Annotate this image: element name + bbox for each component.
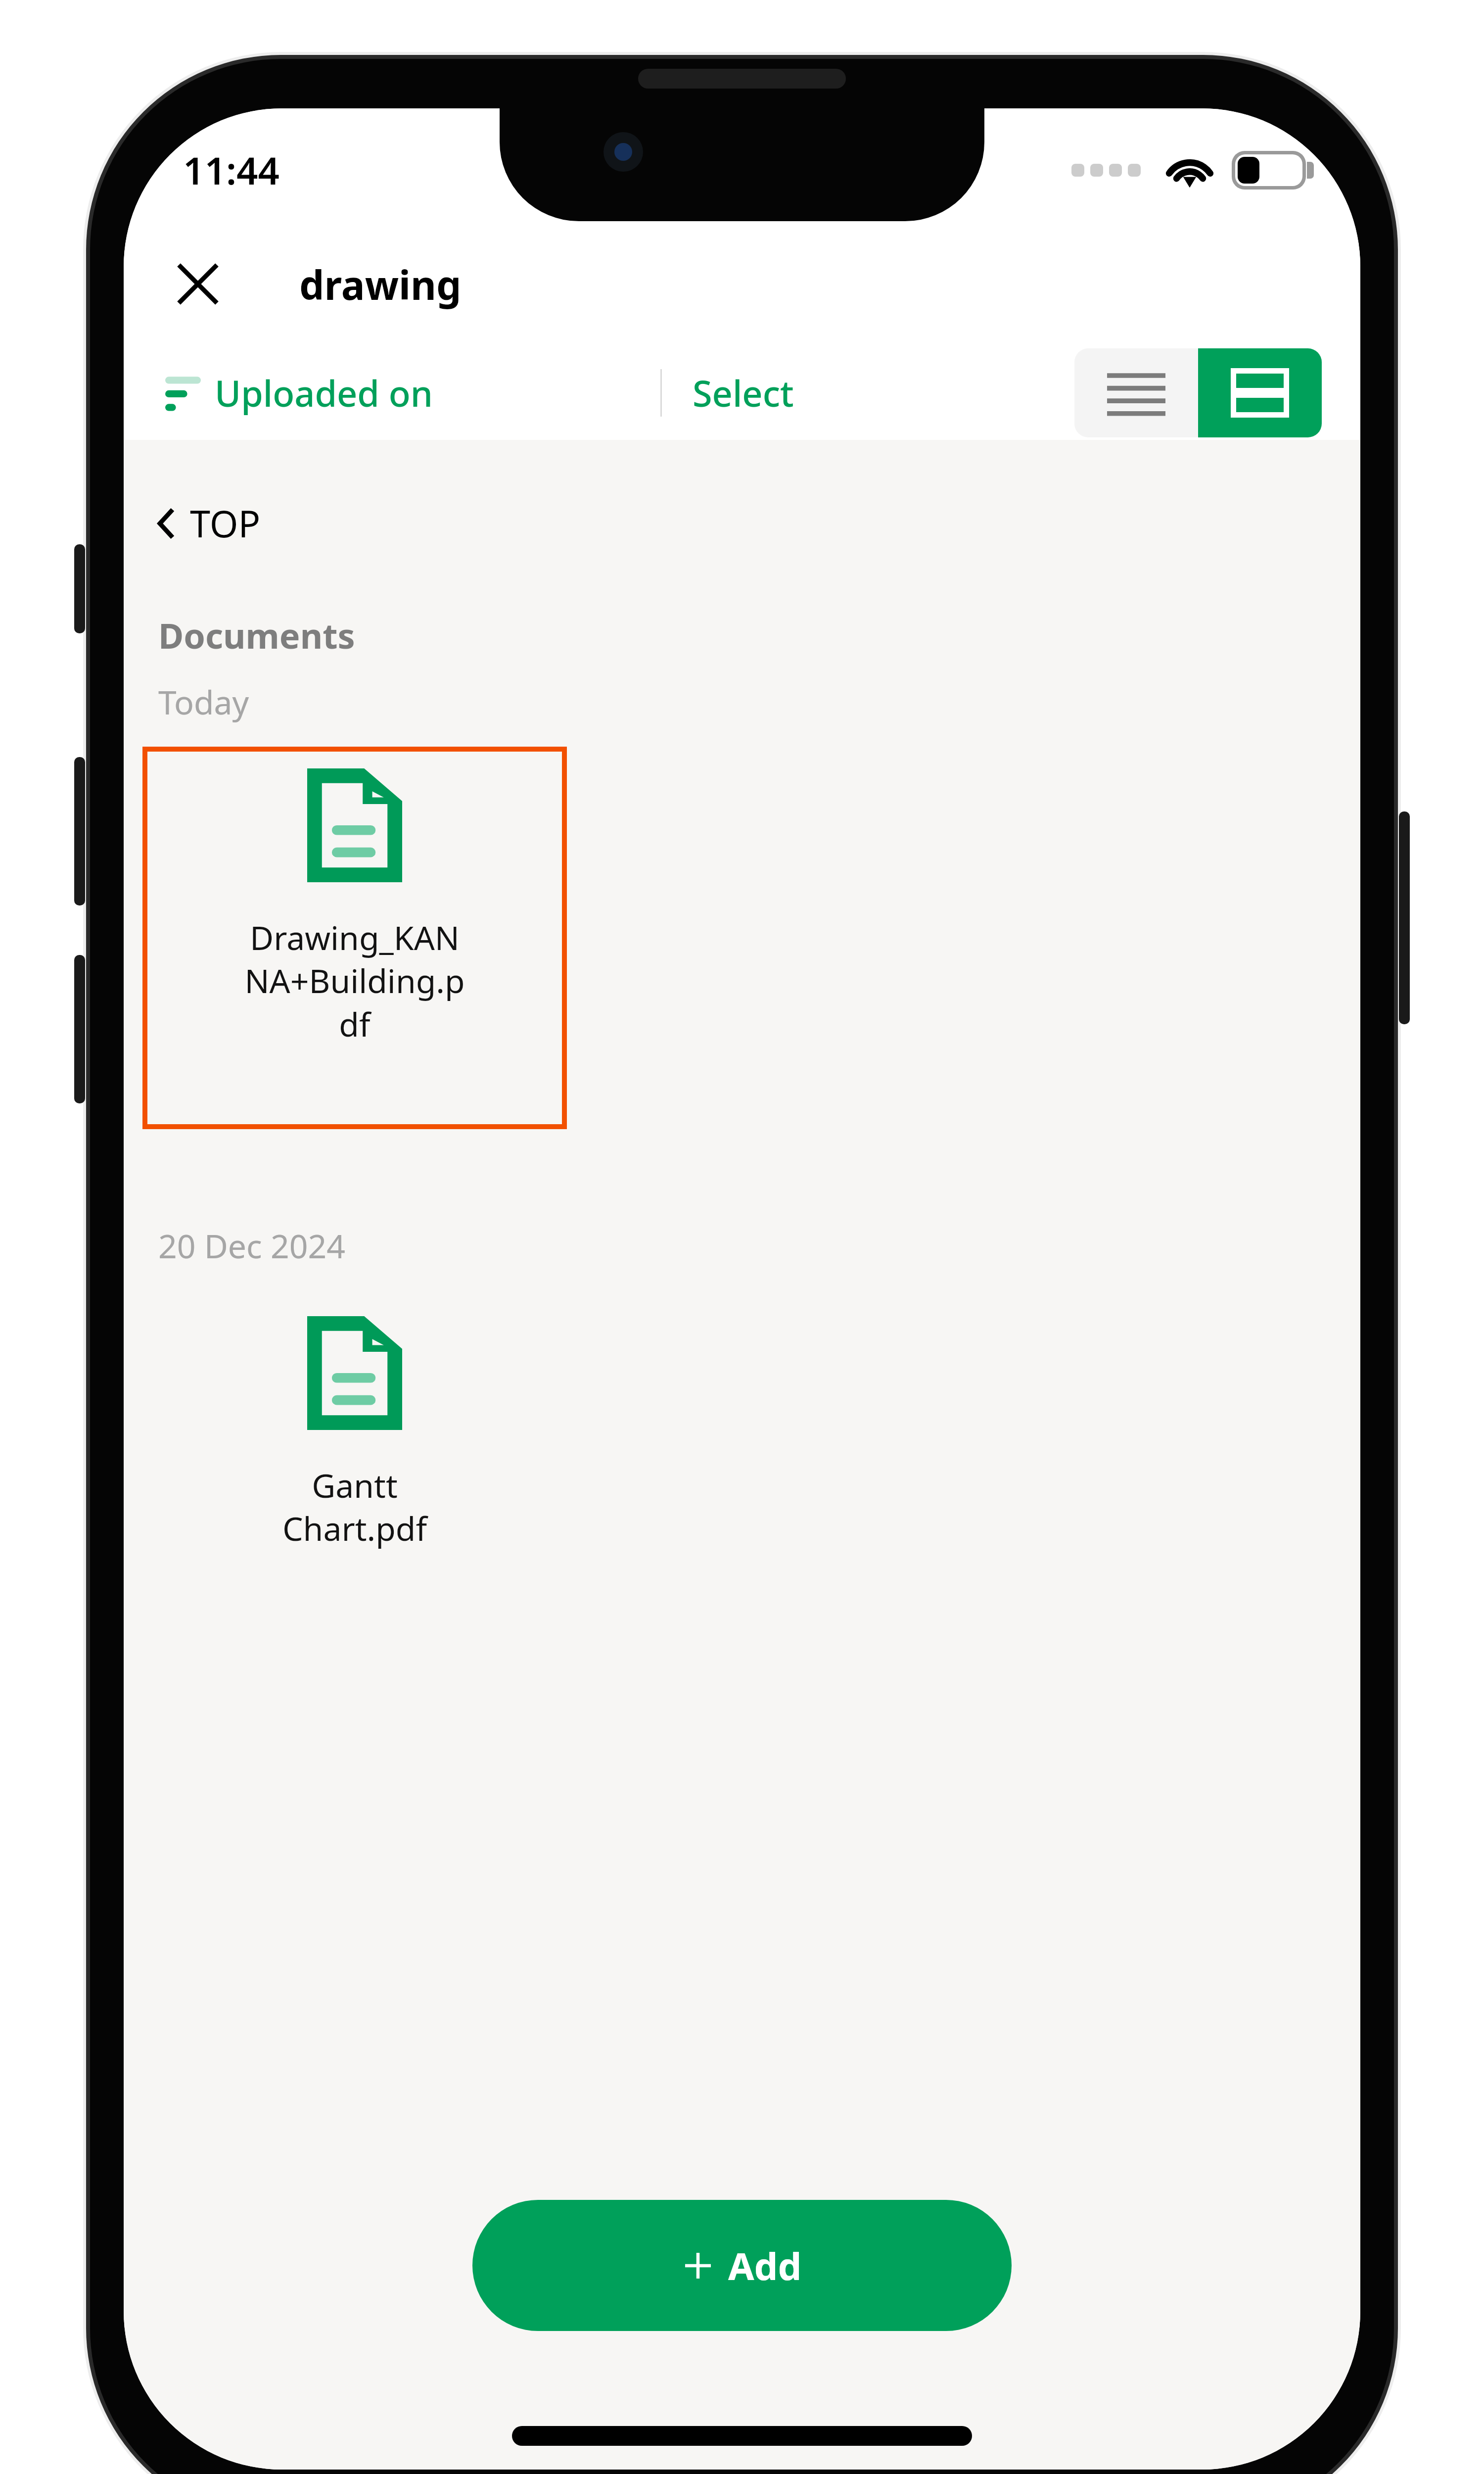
staticText: TOP — [190, 498, 261, 548]
staticText: Today — [158, 679, 249, 724]
staticText: drawing — [299, 257, 462, 311]
button[interactable]: Uploaded on — [153, 361, 445, 425]
staticText: Documents — [158, 612, 355, 659]
button[interactable]: TOP — [143, 489, 274, 557]
button[interactable]: Gantt Chart.pdf — [142, 1299, 567, 1682]
staticText: 11:44 — [183, 144, 279, 196]
button[interactable]: Drawing_KAN NA+Building.p df — [142, 747, 567, 1129]
staticText: Drawing_KAN NA+Building.p df — [147, 915, 562, 1046]
button[interactable]: Add — [472, 2200, 1012, 2331]
staticText: Uploaded on — [215, 369, 433, 417]
staticText: Select — [693, 369, 794, 417]
button[interactable]: Grid view — [1198, 348, 1322, 437]
button[interactable]: Close — [153, 239, 242, 329]
staticText: 20 Dec 2024 — [158, 1223, 345, 1268]
staticText: Gantt Chart.pdf — [142, 1463, 567, 1550]
button[interactable]: List view — [1074, 348, 1198, 437]
staticText: Add — [728, 2240, 802, 2291]
button[interactable]: Select — [678, 360, 809, 426]
